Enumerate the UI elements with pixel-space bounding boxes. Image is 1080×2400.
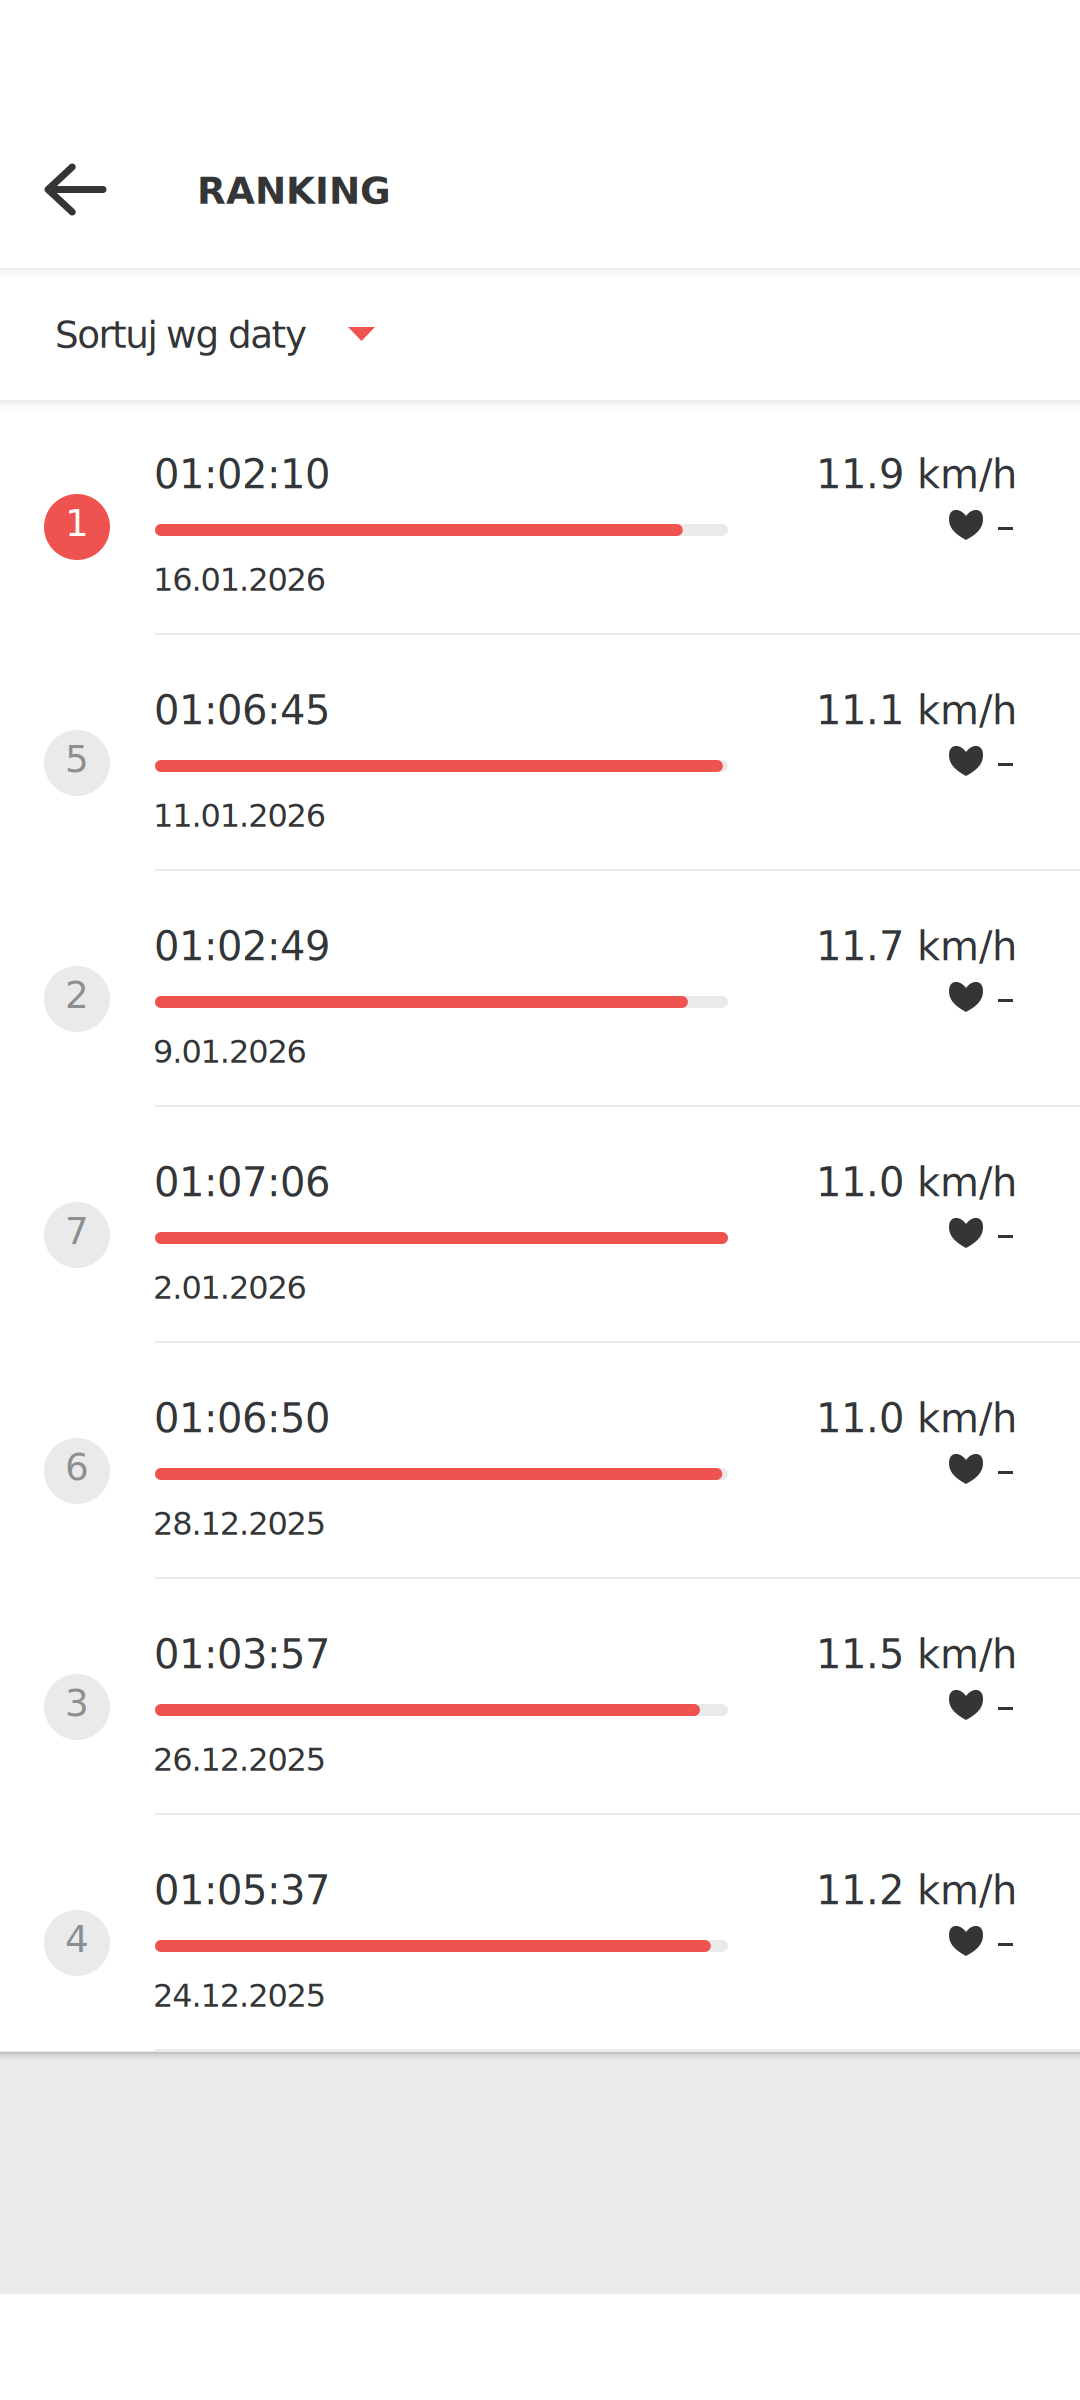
- staticText: 01:02:10: [154, 451, 330, 498]
- button[interactable]: 7: [0, 1107, 1080, 1341]
- staticText: 11.9 km/h: [816, 451, 1017, 498]
- staticText: 7: [65, 1209, 89, 1253]
- staticText: 11.0 km/h: [816, 1159, 1017, 1206]
- button[interactable]: 1: [0, 399, 1080, 633]
- staticText: 11.5 km/h: [816, 1631, 1017, 1678]
- staticText: 9.01.2026: [153, 1033, 307, 1070]
- staticText: 24.12.2025: [153, 1977, 326, 2014]
- staticText: 11.7 km/h: [816, 923, 1017, 970]
- button[interactable]: 2: [0, 871, 1080, 1105]
- staticText: 01:06:45: [154, 687, 330, 734]
- staticText: 1: [65, 501, 89, 545]
- staticText: 11.2 km/h: [816, 1867, 1017, 1914]
- button[interactable]: 5: [0, 635, 1080, 869]
- staticText: 16.01.2026: [153, 561, 326, 598]
- staticText: 11.01.2026: [153, 797, 326, 834]
- staticText: 28.12.2025: [153, 1505, 326, 1542]
- button[interactable]: 3: [0, 1579, 1080, 1813]
- staticText: Sortuj wg daty: [55, 313, 307, 356]
- button[interactable]: 6: [0, 1343, 1080, 1577]
- staticText: 01:06:50: [154, 1395, 330, 1442]
- button[interactable]: Sortuj wg daty: [0, 267, 1080, 399]
- staticText: 11.0 km/h: [816, 1395, 1017, 1442]
- staticText: 01:07:06: [154, 1159, 330, 1206]
- staticText: 01:02:49: [154, 923, 330, 970]
- staticText: 6: [65, 1445, 89, 1489]
- staticText: 2.01.2026: [153, 1269, 307, 1306]
- staticText: RANKING: [197, 169, 391, 212]
- staticText: 2: [65, 973, 89, 1017]
- staticText: 01:05:37: [154, 1867, 330, 1914]
- button[interactable]: Back: [20, 139, 131, 240]
- button[interactable]: 4: [0, 1815, 1080, 2049]
- staticText: 26.12.2025: [153, 1741, 326, 1778]
- staticText: 3: [65, 1681, 89, 1725]
- staticText: 11.1 km/h: [816, 687, 1017, 734]
- staticText: 01:03:57: [154, 1631, 330, 1678]
- staticText: 4: [65, 1917, 89, 1961]
- staticText: 5: [65, 737, 89, 781]
